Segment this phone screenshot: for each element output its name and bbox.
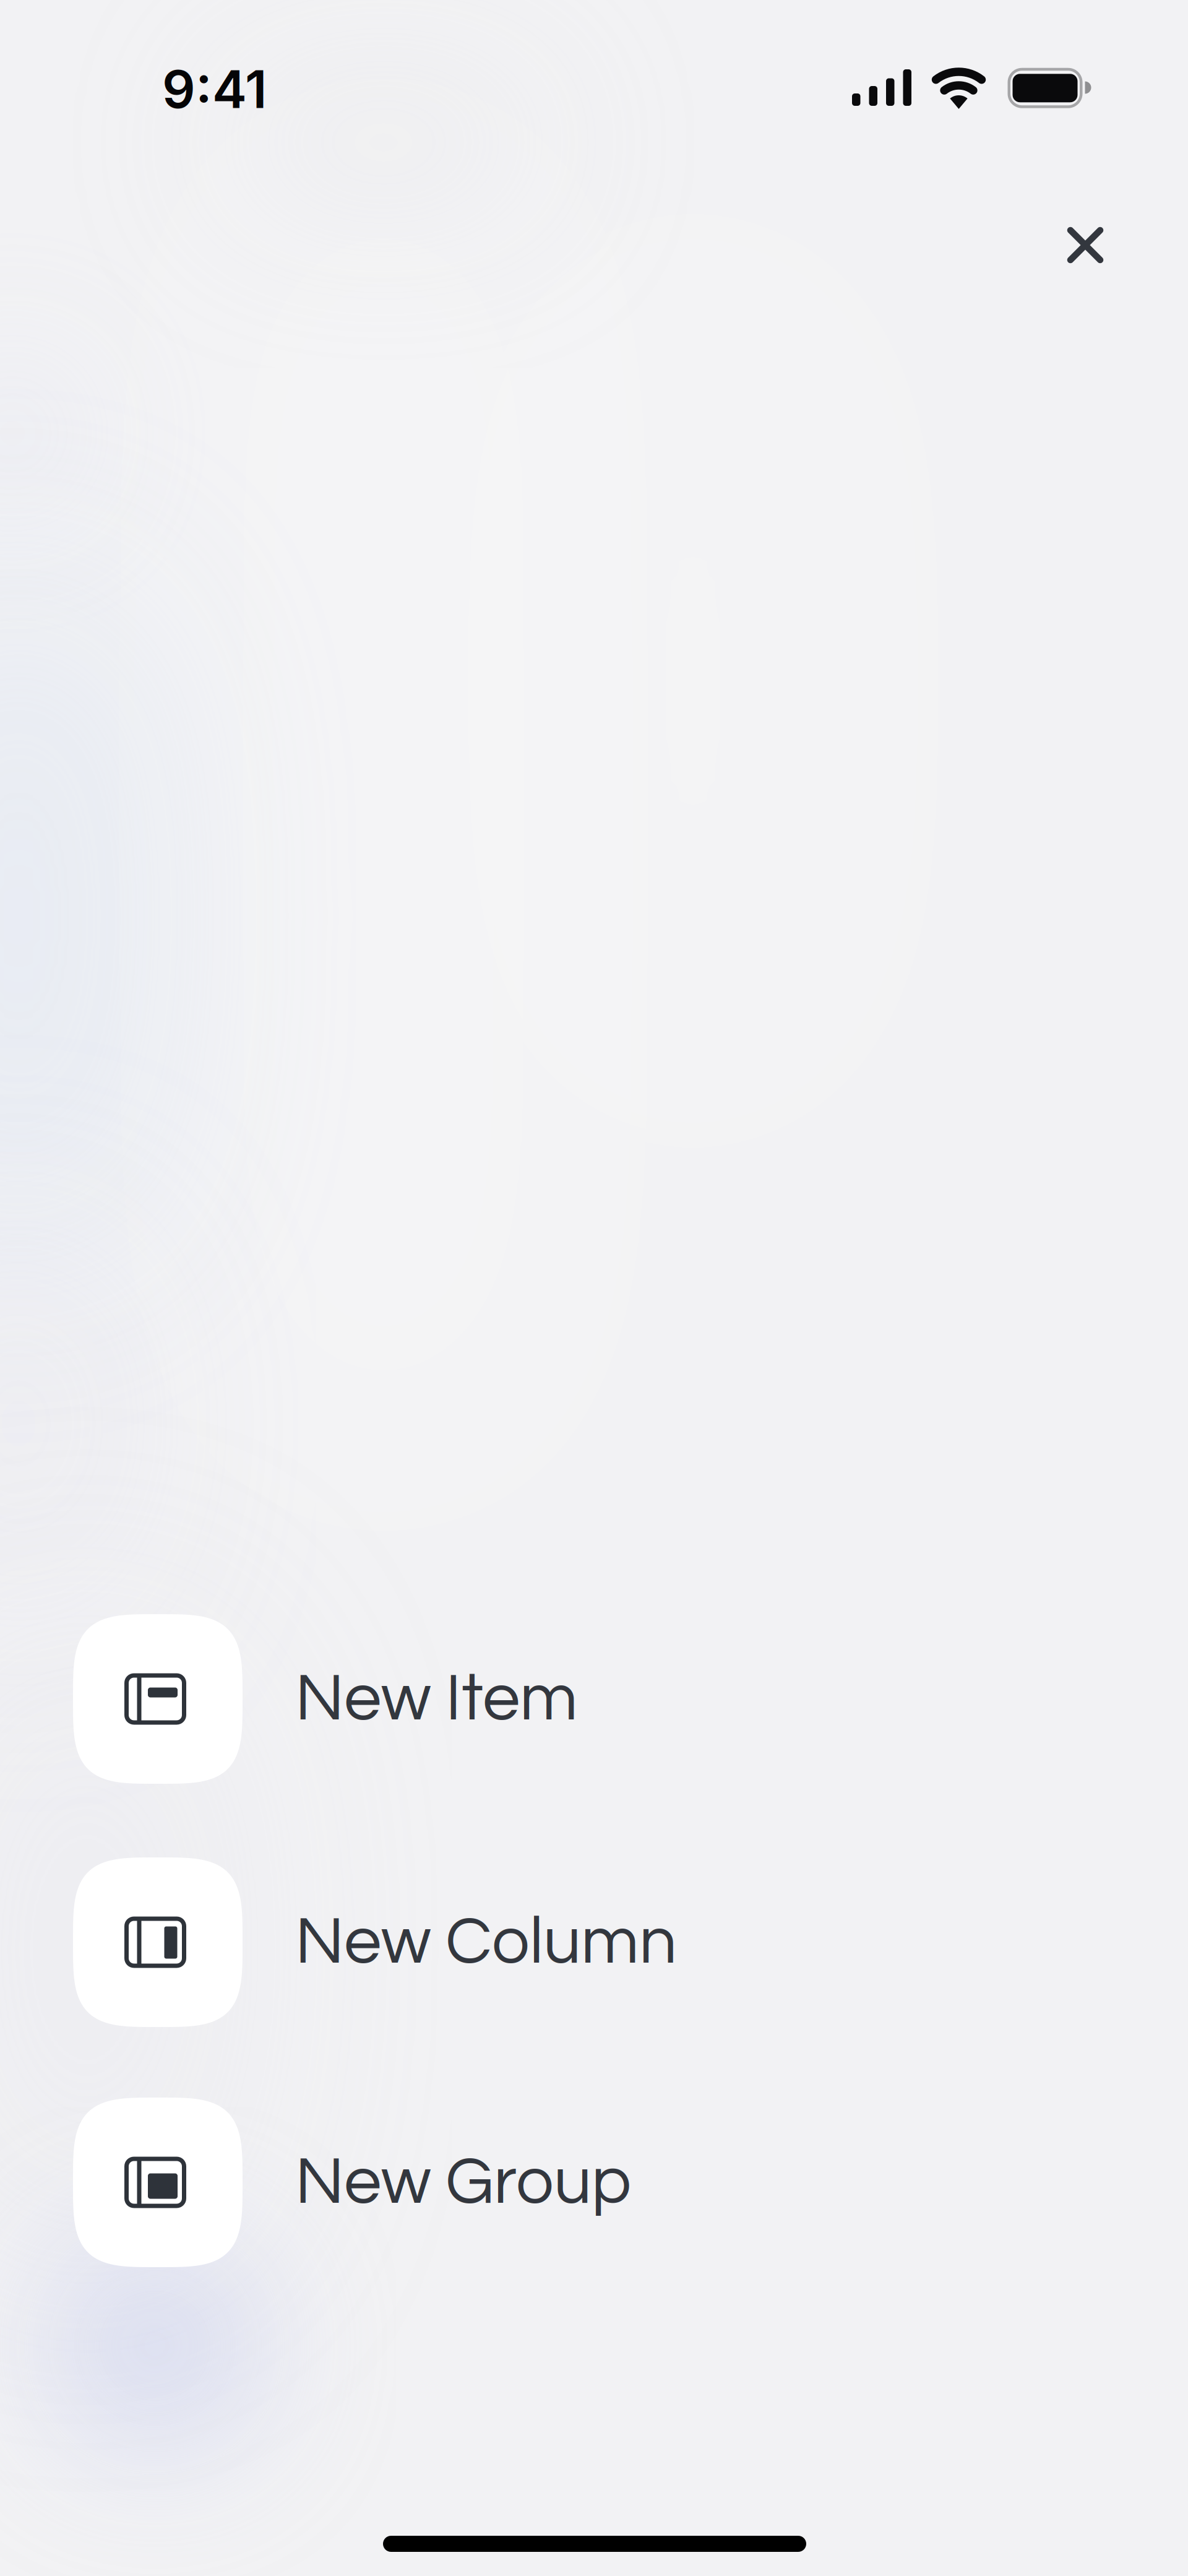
- button[interactable]: New Item: [0, 1614, 1188, 1784]
- staticText: New Column: [295, 1908, 677, 1977]
- staticText: New Group: [295, 2148, 631, 2217]
- button[interactable]: New Column: [0, 1857, 1188, 2027]
- button[interactable]: Close: [1049, 209, 1122, 282]
- staticText: New Item: [295, 1665, 578, 1733]
- staticText: 9:41: [162, 58, 267, 121]
- button[interactable]: New Group: [0, 2098, 1188, 2267]
